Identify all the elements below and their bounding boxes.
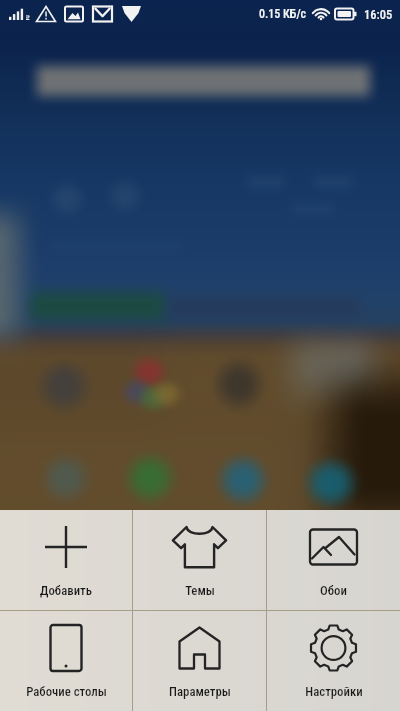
- staticText: 0.15 КБ/с: [259, 7, 307, 21]
- staticText: Настройки: [305, 684, 363, 699]
- staticText: Рабочие столы: [26, 684, 107, 699]
- staticText: Параметры: [169, 684, 231, 699]
- button[interactable]: Рабочие столы: [0, 611, 132, 711]
- button[interactable]: Темы: [133, 510, 266, 610]
- button[interactable]: Настройки: [267, 611, 400, 711]
- staticText: 16:05: [364, 7, 393, 22]
- button[interactable]: Добавить: [0, 510, 132, 610]
- button[interactable]: Параметры: [133, 611, 266, 711]
- staticText: Добавить: [40, 583, 92, 598]
- staticText: Обои: [320, 583, 347, 598]
- staticText: Темы: [185, 583, 215, 598]
- button[interactable]: Обои: [267, 510, 400, 610]
